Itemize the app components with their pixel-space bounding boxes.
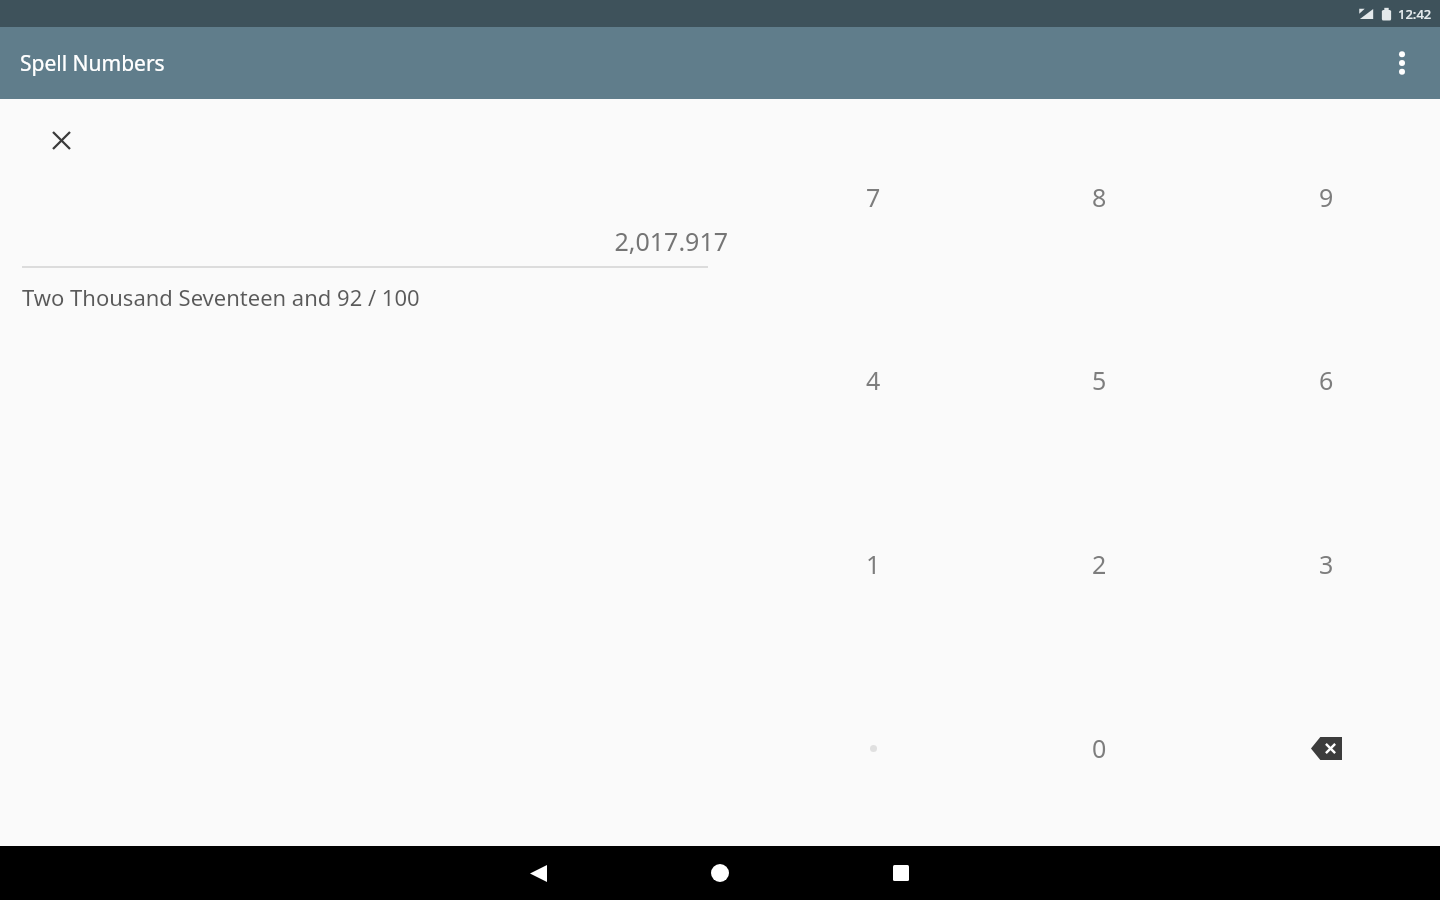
staticText: Spell Numbers: [20, 49, 165, 78]
button[interactable]: Home: [695, 848, 745, 898]
button[interactable]: 4: [760, 288, 986, 472]
staticText: 6: [1319, 363, 1334, 397]
staticText: Two Thousand Seventeen and 92 / 100: [22, 282, 420, 312]
button[interactable]: More options: [1382, 43, 1422, 83]
button[interactable]: 5: [986, 288, 1213, 472]
staticText: 8: [1092, 180, 1107, 214]
staticText: 3: [1319, 547, 1334, 581]
button[interactable]: 3: [1213, 472, 1440, 656]
button[interactable]: Clear: [38, 117, 84, 163]
staticText: 5: [1092, 363, 1107, 397]
button[interactable]: 6: [1213, 288, 1440, 472]
button[interactable]: 1: [760, 472, 986, 656]
staticText: 4: [866, 363, 881, 397]
button[interactable]: 2: [986, 472, 1213, 656]
button[interactable]: 7: [760, 105, 986, 288]
staticText: 1: [866, 547, 881, 581]
button[interactable]: Recents: [876, 848, 926, 898]
staticText: 2,017.917: [0, 224, 728, 258]
staticText: 12:42: [1398, 5, 1432, 23]
staticText: 9: [1319, 180, 1334, 214]
button[interactable]: Backspace: [1213, 656, 1440, 840]
staticText: 7: [866, 180, 881, 214]
button[interactable]: 0: [986, 656, 1213, 840]
button[interactable]: 9: [1213, 105, 1440, 288]
button[interactable]: Back: [513, 848, 563, 898]
button[interactable]: 8: [986, 105, 1213, 288]
staticText: 0: [1092, 731, 1107, 765]
staticText: 2: [1092, 547, 1107, 581]
